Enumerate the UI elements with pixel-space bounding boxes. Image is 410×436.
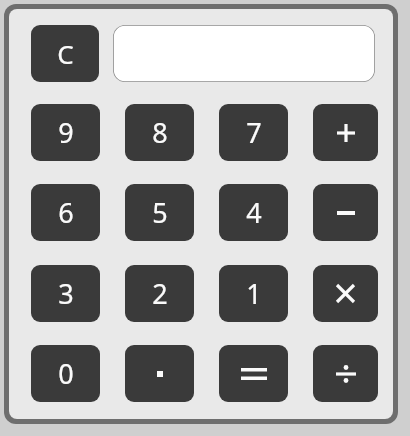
- staticText: 9: [58, 114, 74, 151]
- staticText: 1: [246, 275, 262, 312]
- staticText: 7: [246, 114, 262, 151]
- button[interactable]: 7: [219, 104, 288, 161]
- button[interactable]: 2: [125, 265, 194, 322]
- button[interactable]: 4: [219, 184, 288, 241]
- staticText: 2: [152, 275, 168, 312]
- button[interactable]: 5: [125, 184, 194, 241]
- button[interactable]: 6: [31, 184, 100, 241]
- button[interactable]: 1: [219, 265, 288, 322]
- button[interactable]: Plus: [313, 104, 378, 161]
- button[interactable]: Minus: [313, 184, 378, 241]
- button[interactable]: Multiply: [313, 265, 378, 322]
- button[interactable]: Equals: [219, 345, 288, 402]
- button[interactable]: 3: [31, 265, 100, 322]
- staticText: 8: [152, 114, 168, 151]
- staticText: 3: [58, 275, 74, 312]
- staticText: 5: [152, 194, 168, 231]
- staticText: 4: [246, 194, 262, 231]
- button[interactable]: Divide: [313, 345, 378, 402]
- button[interactable]: C: [31, 25, 99, 82]
- button[interactable]: 0: [31, 345, 100, 402]
- button[interactable]: 8: [125, 104, 194, 161]
- button[interactable]: Decimal point: [125, 345, 194, 402]
- staticText: 0: [58, 355, 74, 392]
- staticText: C: [57, 36, 74, 71]
- button[interactable]: 9: [31, 104, 100, 161]
- button[interactable]: [113, 25, 375, 82]
- staticText: 6: [58, 194, 74, 231]
